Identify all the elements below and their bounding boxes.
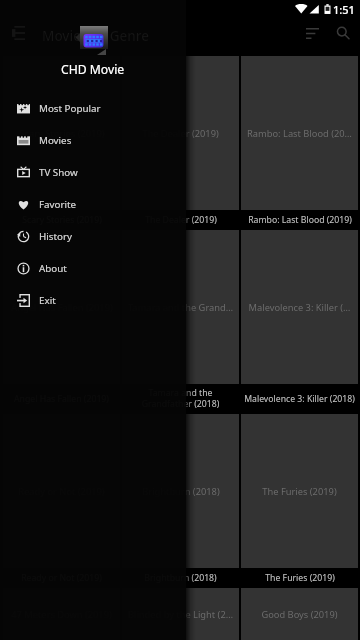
staticText: Tamara and the Grandfather (2018) (127, 301, 234, 314)
staticText: Blinded by the Light (2019) (127, 608, 234, 621)
staticText: TV Show (39, 166, 78, 179)
staticText: Malevolence 3: Killer (2018) (246, 301, 353, 314)
button[interactable]: About (0, 252, 186, 284)
staticText: The Furies (2019) (262, 485, 337, 498)
staticText: Tamara and the Grandfather (2018) (123, 387, 238, 410)
button[interactable]: Good Boys (2019) (241, 588, 358, 640)
staticText: Movies by Genre (42, 27, 149, 45)
button[interactable]: Most Popular (0, 92, 186, 124)
staticText: Angel Has Fallen (2019) (11, 301, 113, 314)
staticText: Scary Stories (2019) (19, 127, 105, 140)
staticText: Favorite (39, 198, 77, 211)
staticText: Rambo: Last Blood (2019) (248, 214, 352, 226)
staticText: CHD Movie (61, 61, 125, 78)
button[interactable]: Blinded by the Light (2019) (122, 588, 239, 640)
staticText: About (39, 262, 67, 275)
button[interactable]: TV Show (0, 156, 186, 188)
button[interactable]: Open navigation drawer (5, 20, 31, 46)
button[interactable]: Search (330, 20, 356, 46)
staticText: Malevolence 3: Killer (2018) (244, 393, 355, 405)
button[interactable]: Malevolence 3: Killer (2018) (241, 230, 358, 413)
staticText: Exit (39, 294, 56, 307)
button[interactable]: Sort (299, 20, 326, 47)
staticText: Good Boys (2019) (261, 608, 338, 621)
button[interactable]: Angel Has Fallen (2019) (3, 230, 120, 413)
button[interactable]: The Dealer (2019) (122, 56, 239, 229)
button[interactable]: Scary Stories (2019) (3, 56, 120, 229)
staticText: Brightburn (2018) (142, 485, 220, 498)
button[interactable]: Movies (0, 124, 186, 156)
button[interactable]: Exit (0, 284, 186, 316)
button[interactable]: The Furies (2019) (241, 414, 358, 587)
staticText: Most Popular (39, 102, 101, 115)
staticText: Brightburn (2018) (144, 572, 217, 584)
button[interactable]: History (0, 220, 186, 252)
staticText: Rambo: Last Blood (2019) (246, 127, 353, 140)
staticText: Movies (39, 134, 72, 147)
button[interactable]: Tamara and the Grandfather (2018) (122, 230, 239, 413)
staticText: 1:51 (333, 2, 355, 17)
staticText: The Dealer (2019) (145, 214, 217, 226)
staticText: The Dealer (2019) (142, 127, 219, 140)
button[interactable]: Favorite (0, 188, 186, 220)
staticText: The Furies (2019) (265, 572, 335, 584)
button[interactable]: Rambo: Last Blood (2019) (241, 56, 358, 229)
button[interactable]: Brightburn (2018) (122, 414, 239, 587)
staticText: History (39, 230, 72, 243)
